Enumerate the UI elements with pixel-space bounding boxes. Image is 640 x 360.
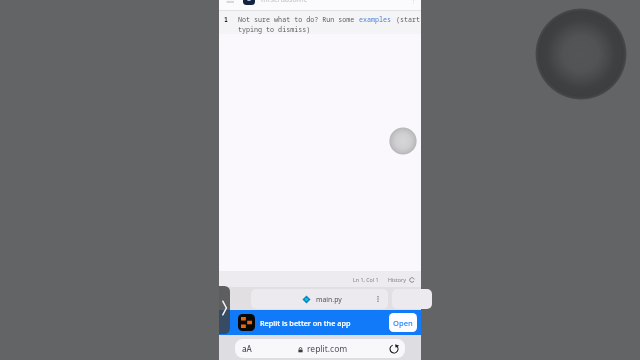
staticText: Replit is better on the app: [260, 318, 351, 328]
button[interactable]: Next file tab: [392, 289, 432, 309]
staticText: aA: [242, 343, 252, 354]
staticText: replit.com: [307, 343, 348, 355]
button[interactable]: Replit is better on the app: [219, 310, 421, 335]
button[interactable]: More options: [409, 0, 418, 5]
staticText: mrscrubsome: [261, 0, 308, 5]
staticText: Not sure what to do? Run some: [238, 15, 359, 24]
staticText: History: [388, 276, 406, 283]
staticText: 1: [224, 15, 229, 24]
button[interactable]: Account: [243, 0, 255, 5]
button[interactable]: Open: [389, 313, 417, 332]
staticText: Open: [393, 318, 413, 328]
button[interactable]: Open file panel: [219, 286, 230, 334]
button[interactable]: main.py: [251, 289, 388, 309]
staticText: Ln 1, Col 1: [353, 276, 379, 283]
staticText: typing to dismiss): [238, 25, 311, 34]
button[interactable]: Reload: [389, 344, 399, 354]
staticText: (start: [392, 15, 421, 24]
staticText: examples: [359, 15, 392, 24]
button[interactable]: aA: [235, 339, 405, 358]
button[interactable]: Menu: [226, 0, 235, 5]
button[interactable]: Tab options: [374, 295, 382, 303]
staticText: main.py: [316, 295, 342, 304]
button[interactable]: History: [388, 276, 415, 283]
